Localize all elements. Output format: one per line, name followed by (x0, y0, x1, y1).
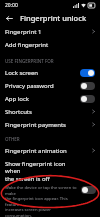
button[interactable]: Back (3, 12, 15, 24)
staticText: Shortcuts (5, 108, 92, 116)
button[interactable]: Fingerprint 1 (0, 25, 100, 38)
staticText: Fingerprint unlock (20, 13, 87, 23)
staticText: the screen is off (5, 175, 50, 183)
staticText: the fingerprint icon appear. This featur… (5, 196, 79, 207)
staticText: Wake the device or tap the screen to mak… (5, 185, 79, 196)
staticText: Fingerprint 1 (5, 28, 92, 36)
button[interactable]: Fingerprint payments (0, 118, 100, 131)
staticText: App lock (5, 95, 80, 103)
staticText: increases screen power consumption. (5, 207, 79, 217)
button[interactable]: App lock (0, 92, 100, 105)
staticText: Fingerprint payments (5, 121, 92, 129)
button[interactable]: Privacy password (0, 79, 100, 92)
staticText: OTHER (5, 136, 20, 142)
staticText: Privacy password (5, 82, 80, 90)
button[interactable]: Show fingerprint icon when (0, 157, 100, 217)
staticText: 20:00 (5, 2, 18, 9)
staticText: Lock screen (5, 69, 80, 77)
staticText: Show fingerprint icon when (5, 160, 79, 175)
staticText: Fingerprint animation (5, 147, 92, 155)
button[interactable]: Lock screen (0, 66, 100, 79)
button[interactable]: Shortcuts (0, 105, 100, 118)
button[interactable]: Fingerprint animation (0, 144, 100, 157)
button[interactable]: Add fingerprint (0, 38, 100, 52)
staticText: USE FINGERPRINT FOR (5, 58, 54, 64)
staticText: Add fingerprint (5, 41, 49, 49)
